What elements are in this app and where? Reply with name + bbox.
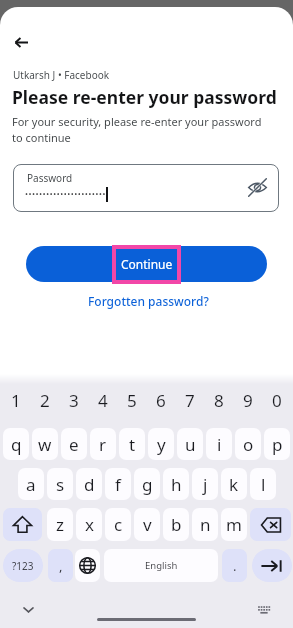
staticText: u <box>185 433 196 456</box>
button[interactable]: x <box>76 508 102 541</box>
staticText: t <box>129 433 136 456</box>
staticText: Password <box>27 171 73 185</box>
staticText: 5 <box>127 389 137 412</box>
button[interactable]: 8 <box>206 386 232 414</box>
button[interactable]: Password <box>13 164 279 212</box>
button[interactable]: z <box>47 508 73 541</box>
staticText: y <box>157 433 166 456</box>
staticText: h <box>171 473 182 496</box>
button[interactable]: 0 <box>264 386 290 414</box>
button[interactable]: 6 <box>148 386 174 414</box>
button[interactable]: Forgotten password? <box>88 293 209 309</box>
button[interactable]: Back <box>7 28 35 56</box>
button[interactable]: ?123 <box>3 549 43 582</box>
staticText: v <box>143 513 152 536</box>
staticText: x <box>85 513 94 536</box>
button[interactable]: Change language <box>75 549 100 582</box>
button[interactable]: o <box>235 428 261 460</box>
button[interactable]: k <box>221 468 247 500</box>
staticText: ?123 <box>12 559 34 573</box>
staticText: m <box>226 513 242 536</box>
button[interactable]: p <box>264 428 290 460</box>
staticText: d <box>84 473 95 496</box>
button[interactable]: Hide keyboard <box>17 598 40 621</box>
button[interactable]: u <box>177 428 203 460</box>
button[interactable]: 3 <box>61 386 87 414</box>
button[interactable]: q <box>3 428 29 460</box>
staticText: 7 <box>185 389 195 412</box>
staticText: k <box>229 473 239 496</box>
button[interactable]: w <box>32 428 58 460</box>
staticText: 1 <box>11 389 21 412</box>
staticText: z <box>56 513 64 536</box>
staticText: p <box>272 433 283 456</box>
button[interactable]: i <box>206 428 232 460</box>
button[interactable]: Backspace <box>250 508 291 541</box>
staticText: For your security, please re-enter your … <box>12 114 262 145</box>
button[interactable]: l <box>250 468 276 500</box>
button[interactable]: t <box>119 428 145 460</box>
staticText: 6 <box>156 389 166 412</box>
staticText: r <box>99 433 107 456</box>
button[interactable]: j <box>192 468 218 500</box>
staticText: Utkarsh J • Facebook <box>13 68 110 82</box>
staticText: j <box>203 473 208 496</box>
button[interactable]: y <box>148 428 174 460</box>
button[interactable]: 5 <box>119 386 145 414</box>
button[interactable]: c <box>105 508 131 541</box>
staticText: . <box>233 557 237 575</box>
staticText: e <box>69 433 79 456</box>
button[interactable]: h <box>163 468 189 500</box>
button[interactable]: . <box>222 549 247 582</box>
button[interactable]: b <box>163 508 189 541</box>
staticText: 4 <box>98 389 108 412</box>
button[interactable]: Shift <box>3 508 42 541</box>
staticText: q <box>11 433 22 456</box>
staticText: o <box>243 433 254 456</box>
button[interactable]: m <box>221 508 247 541</box>
staticText: c <box>114 513 123 536</box>
button[interactable]: a <box>18 468 44 500</box>
button[interactable]: 9 <box>235 386 261 414</box>
staticText: , <box>59 557 63 575</box>
button[interactable]: Show password <box>245 175 269 199</box>
button[interactable]: r <box>90 428 116 460</box>
staticText: Please re-enter your password <box>12 85 277 109</box>
staticText: b <box>171 513 182 536</box>
staticText: i <box>217 433 222 456</box>
staticText: w <box>38 433 52 456</box>
button[interactable]: v <box>134 508 160 541</box>
button[interactable]: e <box>61 428 87 460</box>
staticText: l <box>261 473 266 496</box>
staticText: 9 <box>243 389 253 412</box>
button[interactable]: 1 <box>3 386 29 414</box>
staticText: g <box>142 473 153 496</box>
staticText: 0 <box>272 389 282 412</box>
staticText: 3 <box>69 389 79 412</box>
button[interactable]: Continue <box>26 246 267 282</box>
button[interactable]: Next <box>252 549 292 582</box>
staticText: English <box>145 559 178 572</box>
button[interactable]: Switch keyboard <box>253 598 275 620</box>
staticText: a <box>26 473 36 496</box>
staticText: Continue <box>121 256 173 272</box>
staticText: 2 <box>40 389 50 412</box>
button[interactable]: 2 <box>32 386 58 414</box>
button[interactable]: f <box>105 468 131 500</box>
button[interactable]: d <box>76 468 102 500</box>
button[interactable]: n <box>192 508 218 541</box>
button[interactable]: , <box>48 549 73 582</box>
button[interactable]: s <box>47 468 73 500</box>
button[interactable]: 7 <box>177 386 203 414</box>
staticText: 8 <box>214 389 224 412</box>
button[interactable]: 4 <box>90 386 116 414</box>
button[interactable]: English <box>104 549 218 582</box>
button[interactable]: g <box>134 468 160 500</box>
staticText: f <box>115 473 121 496</box>
staticText: s <box>56 473 65 496</box>
staticText: n <box>200 513 211 536</box>
